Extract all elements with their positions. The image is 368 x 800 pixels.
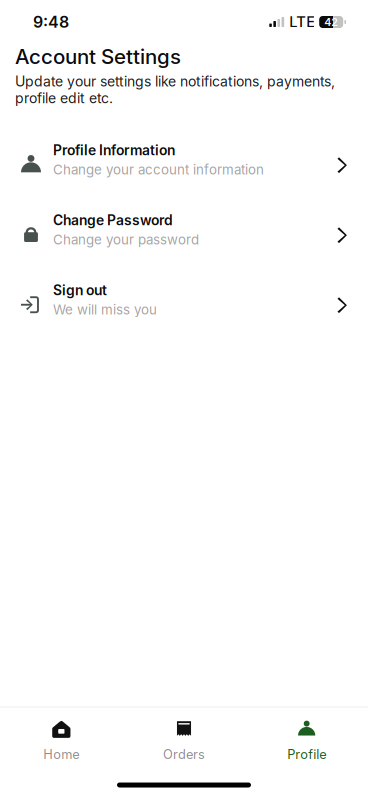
staticText: Change your account information — [53, 161, 264, 178]
staticText: Account Settings — [15, 44, 181, 69]
button[interactable]: Orders — [123, 707, 245, 770]
staticText: 42 — [324, 15, 338, 28]
staticText: Profile Information — [53, 142, 175, 159]
staticText: Update your settings like notifications,… — [15, 73, 335, 107]
button[interactable]: Change Password — [0, 195, 368, 265]
button[interactable]: Profile — [245, 707, 368, 770]
button[interactable]: Profile Information — [0, 125, 368, 195]
staticText: Home — [43, 746, 79, 762]
staticText: 9:48 — [33, 12, 69, 32]
staticText: Profile — [287, 746, 326, 762]
staticText: Change your password — [53, 231, 199, 248]
staticText: We will miss you — [53, 301, 157, 318]
button[interactable]: Sign out — [0, 265, 368, 335]
button[interactable]: Home — [0, 707, 123, 770]
staticText: Change Password — [53, 212, 173, 229]
staticText: Sign out — [53, 282, 107, 299]
staticText: Orders — [163, 746, 205, 762]
staticText: LTE — [289, 13, 315, 31]
